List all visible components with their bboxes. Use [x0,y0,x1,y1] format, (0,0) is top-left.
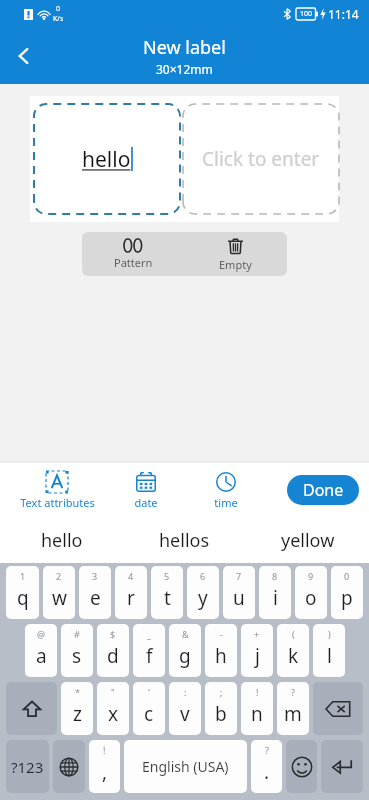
staticText: v [180,701,190,727]
staticText: 30×12mm [156,61,213,77]
button[interactable]: ! [89,740,120,793]
staticText: * [75,686,80,698]
staticText: x [108,701,119,727]
button[interactable]: 0 [331,566,363,619]
button[interactable]: 3 [79,566,111,619]
staticText: 1 [20,570,26,582]
staticText: English (USA) [142,757,229,776]
button[interactable]: Text attributes [8,471,106,510]
staticText: New label [143,35,226,60]
staticText: c [144,701,154,727]
staticText: 6 [200,570,206,582]
button[interactable]: @ [25,624,57,677]
staticText: hello [82,145,131,174]
button[interactable]: - [205,624,237,677]
staticText: k [288,643,299,669]
staticText: ?123 [11,757,44,777]
staticText: 0 [344,570,350,582]
button[interactable]: ?123 [6,740,49,793]
button[interactable]: Empty [184,233,287,276]
staticText: hello [41,528,83,553]
staticText: Pattern [114,255,153,270]
staticText: h [215,643,227,669]
button[interactable]: + [241,624,273,677]
button[interactable]: Backspace [313,682,363,735]
staticText: 5 [164,570,170,582]
staticText: g [179,643,191,669]
staticText: + [254,628,260,640]
staticText: n [251,701,263,727]
staticText: ( [292,628,295,640]
button[interactable]: Click to enter [183,104,339,214]
button[interactable]: hello [34,104,180,214]
button[interactable]: Shift [6,682,57,735]
staticText: , [102,759,108,785]
staticText: date [134,495,158,510]
button[interactable]: 9 [295,566,327,619]
button[interactable]: 2 [43,566,75,619]
staticText: d [107,643,119,669]
button[interactable]: ' [133,682,165,735]
button[interactable]: date [106,471,186,510]
button[interactable]: English (USA) [124,740,247,793]
button[interactable]: ; [205,682,237,735]
staticText: b [215,701,227,727]
staticText: ; [220,686,223,698]
staticText: - [220,628,223,640]
button[interactable]: 7 [223,566,255,619]
button[interactable]: Pattern [82,234,184,274]
button[interactable]: & [169,624,201,677]
button[interactable]: ) [313,624,345,677]
staticText: Click to enter [202,146,320,172]
staticText: i [273,585,278,611]
staticText: y [198,585,208,611]
staticText: $ [110,628,116,640]
button[interactable]: ( [277,624,309,677]
button[interactable]: ? [251,740,282,793]
staticText: hellos [159,528,210,553]
button[interactable]: 6 [187,566,219,619]
button[interactable]: $ [97,624,129,677]
button[interactable]: 5 [151,566,183,619]
staticText: yellow [281,528,335,553]
staticText: Done [303,479,344,501]
staticText: f [146,643,153,669]
staticText: ? [265,744,269,756]
staticText: ! [103,744,106,756]
button[interactable]: Back [0,32,48,80]
staticText: q [17,585,29,611]
button[interactable]: hello [0,518,123,563]
staticText: 8 [272,570,278,582]
button[interactable]: Change language [53,740,85,793]
button[interactable]: ! [241,682,273,735]
button[interactable]: 4 [115,566,147,619]
button[interactable]: # [61,624,93,677]
button[interactable]: " [97,682,129,735]
button[interactable]: 8 [259,566,291,619]
staticText: ) [328,628,331,640]
staticText: 100 [300,9,313,19]
button[interactable]: Emoji [286,740,317,793]
staticText: Empty [219,257,252,272]
button[interactable]: _ [133,624,165,677]
staticText: s [72,643,82,669]
button[interactable]: Enter [321,740,363,793]
staticText: 9 [308,570,314,582]
button[interactable]: * [61,682,93,735]
staticText: : [184,686,187,698]
staticText: t [164,585,171,611]
staticText: e [90,585,101,611]
staticText: . [264,759,270,785]
button[interactable]: time [186,471,266,510]
staticText: j [255,643,260,669]
button[interactable]: : [169,682,201,735]
staticText: 11:14 [328,6,359,22]
button[interactable]: Done [287,475,359,505]
staticText: r [127,585,135,611]
button[interactable]: 1 [6,566,39,619]
staticText: ' [148,686,151,698]
button[interactable]: hellos [123,518,246,563]
button[interactable]: ? [277,682,309,735]
button[interactable]: yellow [246,518,369,563]
staticText: 0 [56,4,61,14]
